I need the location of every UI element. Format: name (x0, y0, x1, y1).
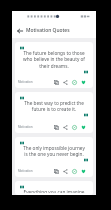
button[interactable]: Copy (53, 168, 59, 174)
button[interactable]: The future belongs to those who believe … (15, 42, 93, 88)
staticText: Motivation (18, 125, 33, 129)
button[interactable]: Everything you can imagine is real. (15, 181, 93, 195)
staticText: The only impossible journey is the one y… (23, 145, 85, 158)
button[interactable]: Bookmark (71, 124, 77, 130)
button[interactable]: Back (15, 26, 24, 35)
button[interactable]: Copy (53, 124, 59, 130)
button[interactable]: The best way to predict the future is to… (15, 92, 93, 133)
button[interactable]: Share (62, 168, 68, 174)
button[interactable]: Bookmark (71, 79, 77, 85)
staticText: Motivation Quotes (26, 27, 70, 34)
staticText: The future belongs to those who believe … (23, 50, 85, 70)
button[interactable]: Favorite (80, 79, 86, 85)
staticText: Motivation (18, 80, 33, 84)
button[interactable]: Copy (53, 79, 59, 85)
staticText: Motivation (18, 169, 33, 173)
button[interactable]: The only impossible journey is the one y… (15, 137, 93, 177)
button[interactable]: Share (62, 124, 68, 130)
button[interactable]: Favorite (80, 124, 86, 130)
staticText: Everything you can imagine is real. (23, 189, 85, 193)
button[interactable]: Share (62, 79, 68, 85)
staticText: The best way to predict the future is to… (23, 100, 85, 113)
button[interactable]: Bookmark (71, 168, 77, 174)
button[interactable]: Favorite (80, 168, 86, 174)
